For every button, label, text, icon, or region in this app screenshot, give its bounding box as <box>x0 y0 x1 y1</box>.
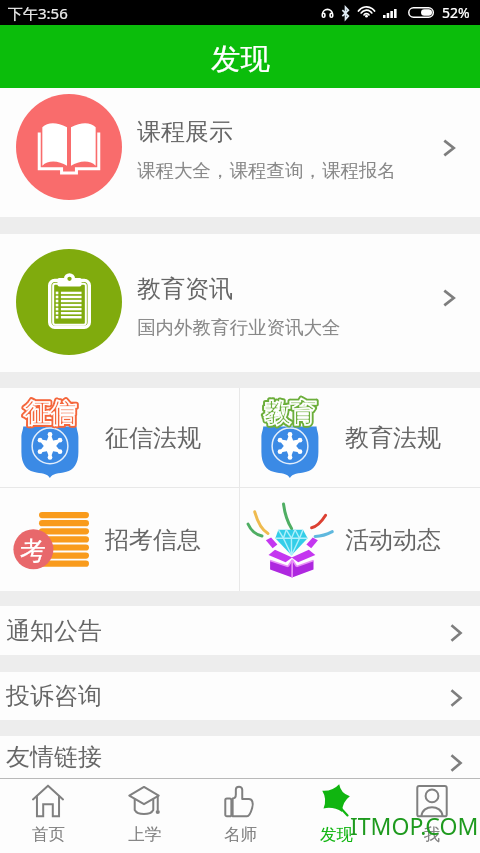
staticText: 通知公告 <box>6 616 446 646</box>
button[interactable]: 征信 <box>0 388 239 487</box>
staticText: 上学 <box>128 824 161 845</box>
staticText: 活动动态 <box>345 525 441 555</box>
button[interactable]: 课程展示 <box>0 88 480 217</box>
staticText: 征信法规 <box>105 423 201 453</box>
staticText: 教育法规 <box>345 423 441 453</box>
staticText: ITMOP.COM <box>350 810 479 841</box>
staticText: 考 <box>20 535 46 568</box>
staticText: 征信 <box>24 397 76 430</box>
button[interactable]: 投诉咨询 <box>0 672 480 720</box>
staticText: 教育资讯 <box>137 274 233 304</box>
button[interactable]: Teachers <box>192 779 288 853</box>
staticText: 征信 <box>24 397 76 430</box>
staticText: 发现 <box>211 41 270 78</box>
staticText: 首页 <box>32 824 65 845</box>
button[interactable]: 教育资讯 <box>0 234 480 372</box>
staticText: 下午3:56 <box>8 3 68 23</box>
button[interactable]: Home <box>0 779 96 853</box>
button[interactable]: Discover <box>288 779 384 853</box>
staticText: 课程大全，课程查询，课程报名 <box>137 159 396 182</box>
staticText: 国内外教育行业资讯大全 <box>137 316 341 339</box>
staticText: 教育 <box>264 397 316 430</box>
button[interactable]: 考 <box>0 488 239 591</box>
button[interactable]: School <box>96 779 192 853</box>
staticText: 友情链接 <box>6 742 446 772</box>
staticText: 52% <box>442 3 470 22</box>
button[interactable]: 教育 <box>240 388 480 487</box>
staticText: 投诉咨询 <box>6 681 446 711</box>
staticText: 课程展示 <box>137 117 233 147</box>
staticText: 发现 <box>320 824 353 845</box>
button[interactable]: Profile <box>384 779 480 853</box>
button[interactable]: 通知公告 <box>0 606 480 655</box>
button[interactable]: 友情链接 <box>0 736 480 777</box>
staticText: 征信 <box>24 397 76 430</box>
staticText: 我 <box>424 824 441 845</box>
staticText: 教育 <box>264 397 316 430</box>
staticText: 教育 <box>264 397 316 430</box>
staticText: 名师 <box>224 824 257 845</box>
button[interactable]: 活动动态 <box>240 488 480 591</box>
staticText: 招考信息 <box>105 525 201 555</box>
